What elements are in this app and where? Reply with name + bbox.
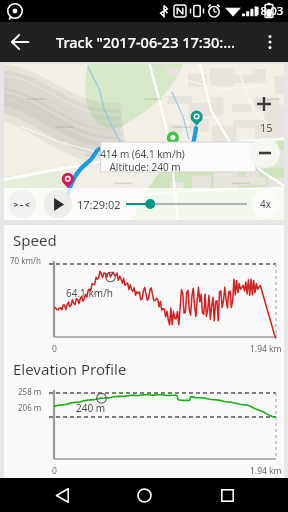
button[interactable]: Play [44,190,72,218]
staticText: Altitude: 240 m [109,160,181,174]
staticText: 414 m (64.1 km/h) [100,147,185,161]
button[interactable]: More options [252,24,288,60]
staticText: 17:29:02 [77,197,121,212]
button[interactable]: Back [41,478,83,512]
staticText: Elevation Profile [13,359,127,379]
staticText: 64.1 km/h [66,286,114,300]
button[interactable]: Zoom out [250,138,280,168]
staticText: >-< [13,198,31,211]
staticText: Track "2017-06-23 17:30:… [56,32,252,52]
button[interactable]: Recent apps [206,478,248,512]
staticText: 18:03 [254,3,284,19]
staticText: 240 m [76,401,106,415]
button[interactable]: Fit track to screen [8,190,36,218]
button[interactable]: Zoom in [250,90,278,118]
staticText: 0 [52,465,57,477]
staticText: 15 [260,120,273,135]
staticText: 70 km/h [10,255,41,266]
staticText: 206 m [18,402,42,413]
staticText: 1.94 km [250,343,282,355]
staticText: Speed [13,230,57,250]
staticText: 258 m [18,386,42,397]
button[interactable]: Playback speed 4x [252,190,280,218]
staticText: 1.94 km [250,465,282,477]
button[interactable]: Home [123,478,165,512]
button[interactable]: Back [0,22,40,62]
staticText: 4x [260,197,272,211]
button[interactable]: Playback position [126,190,247,218]
staticText: 0 [52,343,57,355]
